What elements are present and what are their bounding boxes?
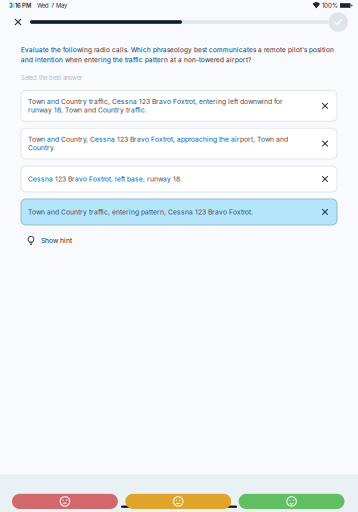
button[interactable]: Cessna 123 Bravo Foxtrot, left base, run… xyxy=(21,166,337,192)
staticText: 3:16 PM xyxy=(9,2,31,9)
staticText: Wed 7 May xyxy=(31,2,67,9)
staticText: Town and Country traffic, Cessna 123 Bra… xyxy=(28,97,283,114)
staticText: Cessna 123 Bravo Foxtrot, left base, run… xyxy=(28,175,182,183)
staticText: Evaluate the following radio calls. Whic… xyxy=(21,46,334,64)
button[interactable]: Did not get it xyxy=(12,494,118,509)
staticText: Town and Country, Cessna 123 Bravo Foxtr… xyxy=(28,135,288,152)
button[interactable]: Town and Country traffic, Cessna 123 Bra… xyxy=(21,90,337,121)
button[interactable]: Town and Country traffic, entering patte… xyxy=(21,199,337,225)
button[interactable]: Town and Country, Cessna 123 Bravo Foxtr… xyxy=(21,128,337,159)
staticText: Show hint xyxy=(41,236,72,244)
button[interactable]: Got it xyxy=(239,494,344,509)
staticText: Town and Country traffic, entering patte… xyxy=(28,208,253,216)
button[interactable]: Show hint xyxy=(21,232,337,248)
button[interactable]: Almost had it xyxy=(125,494,231,509)
staticText: 100% xyxy=(320,2,340,9)
button[interactable]: Close xyxy=(6,12,30,32)
staticText: Select the best answer xyxy=(21,74,82,81)
